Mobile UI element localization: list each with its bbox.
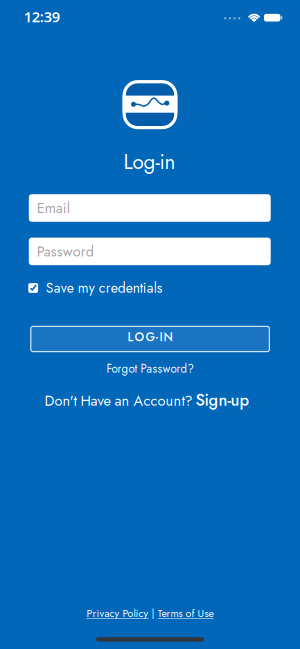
button[interactable]: Privacy Policy <box>86 606 148 621</box>
staticText: Email <box>37 198 70 218</box>
staticText: | <box>151 606 154 621</box>
button[interactable]: L O G - I N <box>30 326 270 352</box>
button[interactable]: Sign-up <box>195 388 249 412</box>
staticText: Log-in <box>123 147 175 177</box>
staticText: L O G - I N <box>128 328 173 346</box>
button[interactable]: Terms of Use <box>157 606 213 621</box>
staticText: Forgot Password? <box>106 360 193 377</box>
button[interactable]: Save my credentials <box>28 278 163 298</box>
staticText: Don't Have an Account? <box>44 390 192 411</box>
staticText: 12:39 <box>24 7 60 26</box>
staticText: Save my credentials <box>46 278 163 298</box>
staticText: Terms of Use <box>157 606 213 621</box>
staticText: Password <box>37 241 94 262</box>
button[interactable]: Forgot Password? <box>106 360 193 377</box>
button[interactable]: Password <box>29 238 271 265</box>
button[interactable]: Email <box>29 194 271 222</box>
staticText: Sign-up <box>195 388 249 412</box>
staticText: Privacy Policy <box>86 606 148 621</box>
